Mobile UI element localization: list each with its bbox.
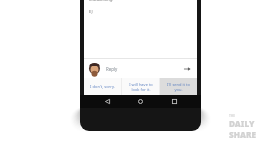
button[interactable]: Back [101,95,114,108]
staticText: SHARE [229,129,256,140]
staticText: onboarding. [89,0,114,3]
button[interactable]: Recent apps [168,95,181,108]
button[interactable]: THE [229,114,256,140]
staticText: I'll send it to you. [167,82,190,92]
staticText: THE [229,114,236,118]
button[interactable]: I'll send it to you. [160,78,197,95]
button[interactable]: I will have to look for it. [122,78,159,95]
staticText: EJ [89,9,93,15]
button[interactable]: Send [182,64,192,74]
staticText: I don't, sorry. [90,84,115,89]
button[interactable]: Reply [84,59,197,78]
button[interactable]: I don't, sorry. [84,78,121,95]
staticText: DAILY [229,118,255,129]
staticText: I will have to look for it. [129,82,153,92]
button[interactable]: Home [134,95,147,108]
staticText: Reply [106,66,118,72]
